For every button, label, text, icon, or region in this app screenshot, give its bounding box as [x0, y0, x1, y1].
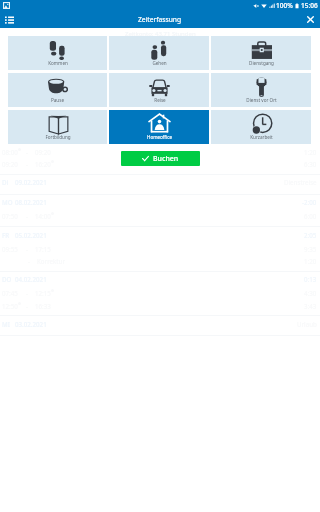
staticText: Di — [2, 178, 9, 186]
staticText: 2:05 — [304, 231, 317, 239]
staticText: Reise — [154, 97, 166, 103]
button[interactable]: 09:20 — [2, 158, 317, 170]
button[interactable]: Fortbildung — [8, 110, 107, 144]
staticText: DO — [2, 275, 12, 283]
staticText: Kurzarbeit — [250, 134, 273, 140]
staticText: 08.02.2021 — [15, 198, 47, 206]
staticText: 05.02.2021 — [15, 231, 47, 239]
button[interactable]: MO — [2, 194, 317, 210]
staticText: Dienstgang — [249, 60, 274, 66]
button[interactable]: Gehen — [109, 36, 209, 70]
staticText: Zeiterfassung — [138, 15, 182, 24]
staticText: MI — [2, 320, 10, 328]
button[interactable]: Reise — [109, 73, 209, 107]
button[interactable]: Kommen — [8, 36, 107, 70]
button[interactable]: Dienst vor Ort — [211, 73, 311, 107]
button[interactable]: Close — [301, 11, 320, 28]
staticText: FR — [2, 231, 10, 239]
button[interactable]: Homeoffice — [109, 110, 209, 144]
button[interactable]: Pause — [8, 73, 107, 107]
staticText: Buchen — [153, 154, 179, 164]
button[interactable]: Kurzarbeit — [211, 110, 311, 144]
staticText: 0:13 — [304, 275, 317, 283]
button[interactable]: Dienstgang — [211, 36, 311, 70]
staticText: 03.02.2021 — [15, 320, 47, 328]
button[interactable]: DO — [2, 271, 317, 287]
staticText: 15:06 — [301, 1, 318, 10]
button[interactable]: Buchen — [121, 151, 200, 166]
staticText: 04.02.2021 — [15, 275, 47, 283]
staticText: Dienst vor Ort — [246, 97, 277, 103]
staticText: Fortbildung — [45, 134, 71, 140]
staticText: Gehen — [152, 60, 167, 66]
staticText: Kommen — [48, 60, 68, 66]
staticText: -2:00 — [302, 198, 317, 206]
staticText: Zeitkonto: 43.71 Stunden — [125, 30, 196, 36]
staticText: Homeoffice — [147, 134, 172, 140]
staticText: 09.02.2021 — [15, 178, 47, 186]
button[interactable]: 08:00 — [2, 146, 317, 158]
staticText: 100% — [276, 1, 293, 10]
button[interactable]: Menu — [0, 11, 19, 28]
staticText: MO — [2, 198, 13, 206]
staticText: Pause — [51, 97, 64, 103]
